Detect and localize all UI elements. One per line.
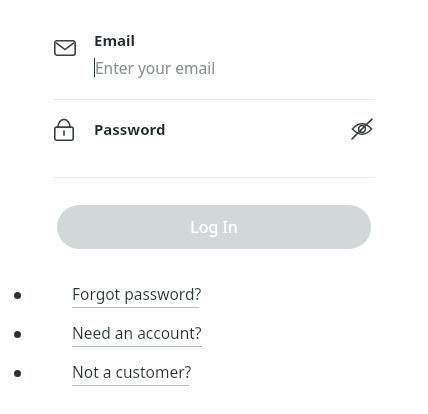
button[interactable]: Need an account? xyxy=(0,320,428,349)
button[interactable]: Show password xyxy=(346,115,378,143)
staticText: Log In xyxy=(190,216,238,238)
button[interactable]: Log In xyxy=(57,205,371,249)
button[interactable]: Email xyxy=(0,30,428,78)
button[interactable]: Forgot password? xyxy=(0,281,428,310)
staticText: Need an account? xyxy=(72,322,202,343)
staticText: Not a customer? xyxy=(72,361,192,382)
staticText: Password xyxy=(94,119,166,139)
staticText: Forgot password? xyxy=(72,283,202,304)
button[interactable]: Password xyxy=(0,115,428,143)
staticText: Enter your email xyxy=(95,57,216,78)
staticText: Email xyxy=(94,30,135,50)
button[interactable]: Not a customer? xyxy=(0,359,428,388)
